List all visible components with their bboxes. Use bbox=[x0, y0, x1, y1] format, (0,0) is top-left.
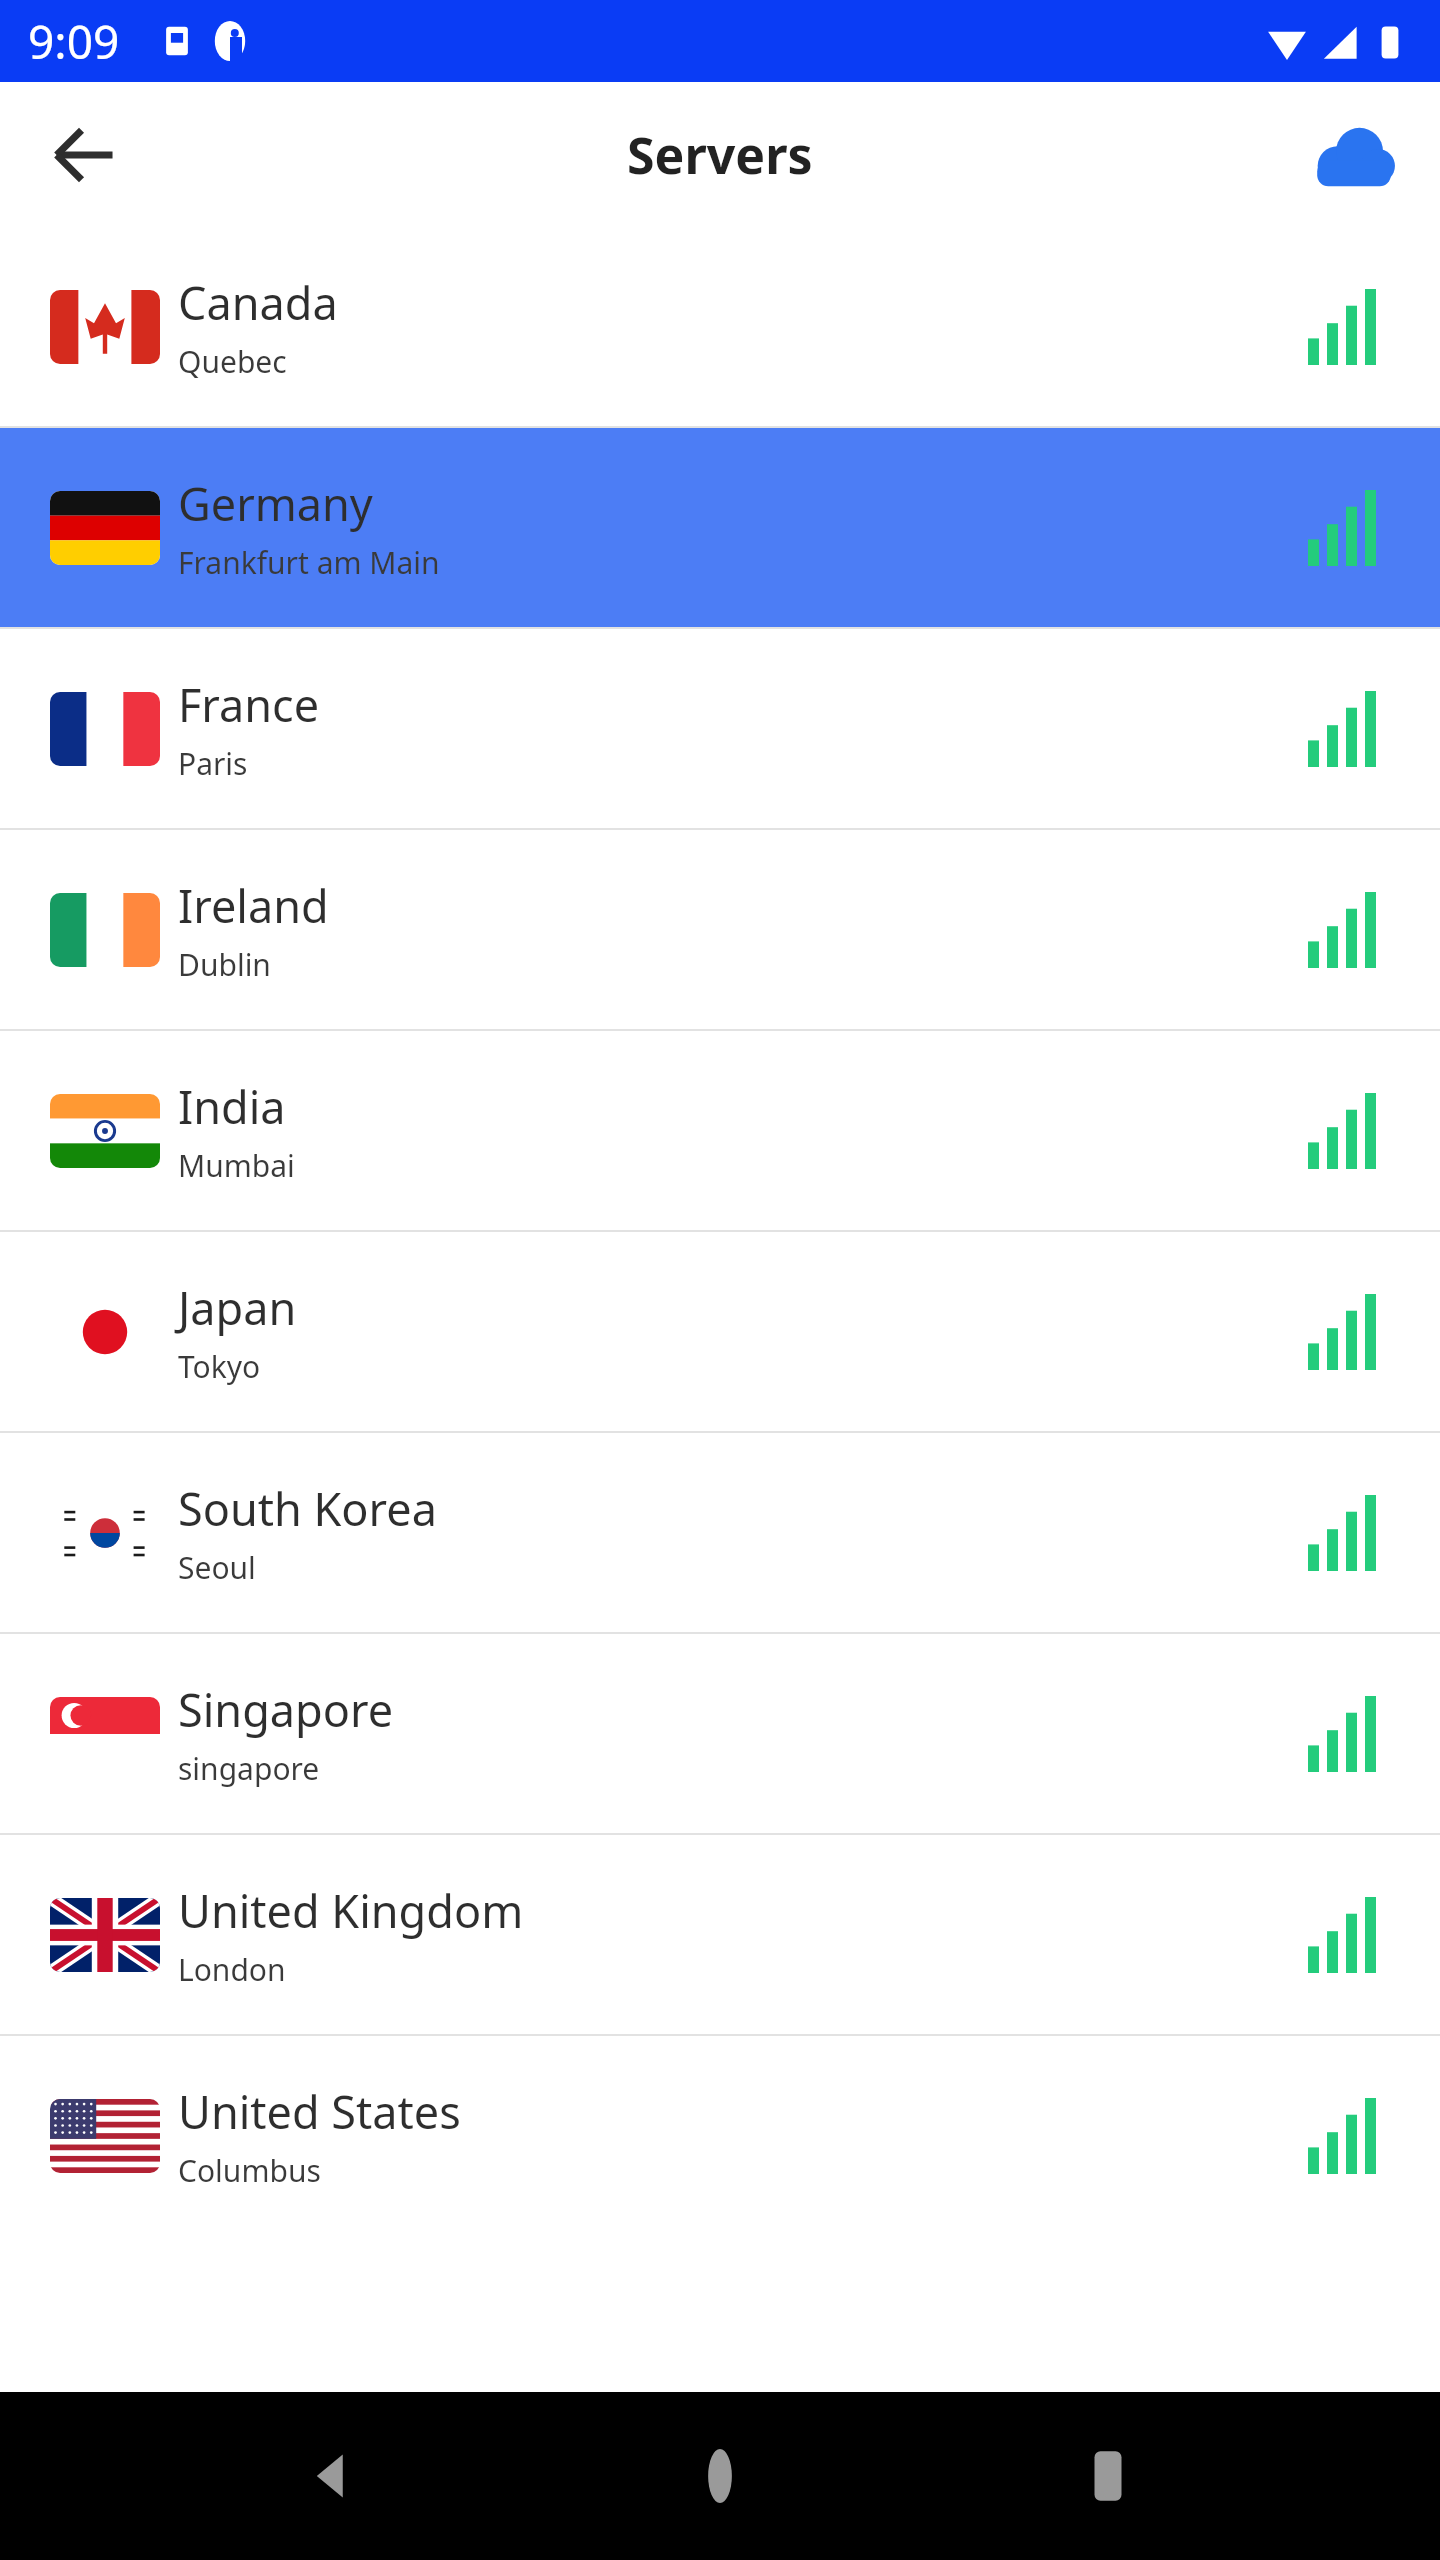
staticText: Germany bbox=[178, 473, 373, 534]
button[interactable]: Recents bbox=[1053, 2421, 1163, 2531]
staticText: London bbox=[178, 1949, 286, 1990]
button[interactable]: Back bbox=[42, 113, 126, 197]
button[interactable]: United States bbox=[0, 2036, 1440, 2235]
staticText: Ireland bbox=[178, 875, 329, 936]
staticText: Frankfurt am Main bbox=[178, 542, 440, 583]
button[interactable]: Home bbox=[665, 2421, 775, 2531]
button[interactable]: India bbox=[0, 1031, 1440, 1230]
staticText: Columbus bbox=[178, 2150, 321, 2191]
staticText: Mumbai bbox=[178, 1145, 295, 1186]
button[interactable]: Japan bbox=[0, 1232, 1440, 1431]
staticText: Japan bbox=[178, 1277, 297, 1338]
button[interactable]: South Korea bbox=[0, 1433, 1440, 1632]
button[interactable]: United Kingdom bbox=[0, 1835, 1440, 2034]
button[interactable]: Canada bbox=[0, 227, 1440, 426]
staticText: Paris bbox=[178, 743, 248, 784]
button[interactable]: Cloud bbox=[1306, 107, 1402, 203]
staticText: South Korea bbox=[178, 1478, 437, 1539]
staticText: Servers bbox=[627, 121, 813, 189]
staticText: Seoul bbox=[178, 1547, 256, 1588]
button[interactable]: Back bbox=[278, 2421, 388, 2531]
staticText: Canada bbox=[178, 272, 338, 333]
staticText: France bbox=[178, 674, 320, 735]
staticText: Singapore bbox=[178, 1679, 394, 1740]
button[interactable]: Singapore bbox=[0, 1634, 1440, 1833]
staticText: Quebec bbox=[178, 341, 287, 382]
staticText: 9:09 bbox=[28, 10, 120, 73]
button[interactable]: Germany bbox=[0, 428, 1440, 627]
staticText: Dublin bbox=[178, 944, 271, 985]
staticText: India bbox=[178, 1076, 286, 1137]
staticText: singapore bbox=[178, 1748, 320, 1789]
button[interactable]: France bbox=[0, 629, 1440, 828]
staticText: United Kingdom bbox=[178, 1880, 524, 1941]
staticText: Tokyo bbox=[178, 1346, 261, 1387]
staticText: United States bbox=[178, 2081, 461, 2142]
button[interactable]: Ireland bbox=[0, 830, 1440, 1029]
